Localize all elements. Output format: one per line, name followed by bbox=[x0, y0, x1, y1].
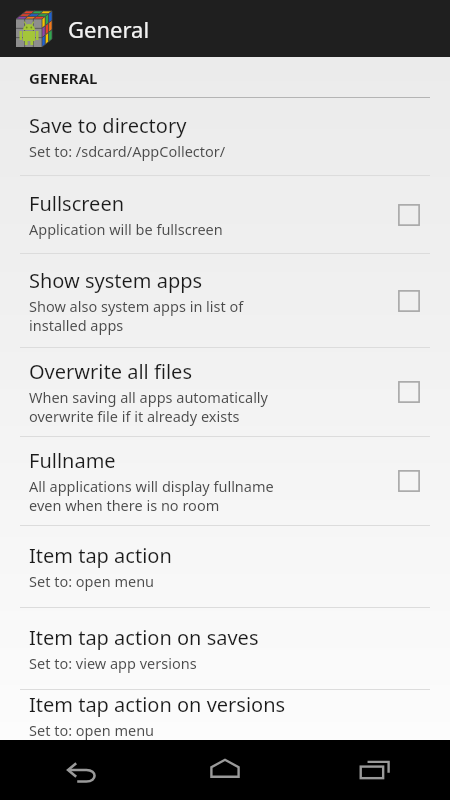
button[interactable]: Home bbox=[150, 740, 300, 800]
staticText: Item tap action on saves bbox=[29, 624, 259, 651]
button[interactable]: Fullname bbox=[386, 458, 432, 504]
button[interactable]: Show system apps bbox=[386, 278, 432, 324]
button[interactable]: Item tap action on saves bbox=[0, 608, 450, 689]
button[interactable]: Item tap action on versions bbox=[0, 690, 450, 740]
staticText: Set to: /sdcard/AppCollector/ bbox=[29, 141, 226, 161]
staticText: Show system apps bbox=[29, 267, 203, 294]
staticText: Set to: open menu bbox=[29, 720, 155, 740]
button[interactable]: Save to directory bbox=[0, 98, 450, 175]
staticText: Overwrite all files bbox=[29, 358, 192, 385]
staticText: All applications will display fullname e… bbox=[29, 476, 274, 515]
button[interactable]: Item tap action bbox=[0, 526, 450, 607]
button[interactable]: Show system apps bbox=[0, 254, 450, 347]
button[interactable]: Overwrite all files bbox=[0, 348, 450, 436]
staticText: Fullscreen bbox=[29, 190, 125, 217]
staticText: Application will be fullscreen bbox=[29, 219, 223, 239]
button[interactable]: Back bbox=[0, 740, 150, 800]
staticText: GENERAL bbox=[29, 68, 98, 88]
staticText: Save to directory bbox=[29, 112, 187, 139]
staticText: General bbox=[68, 14, 150, 44]
button[interactable]: Fullname bbox=[0, 437, 450, 525]
staticText: Fullname bbox=[29, 447, 116, 474]
staticText: Item tap action on versions bbox=[29, 691, 286, 718]
staticText: Item tap action bbox=[29, 542, 172, 569]
staticText: Set to: open menu bbox=[29, 571, 155, 591]
button[interactable]: Recent apps bbox=[300, 740, 450, 800]
button[interactable]: Overwrite all files bbox=[386, 369, 432, 415]
button[interactable]: Fullscreen bbox=[0, 176, 450, 253]
staticText: Show also system apps in list of install… bbox=[29, 296, 244, 335]
staticText: Set to: view app versions bbox=[29, 653, 197, 673]
button[interactable]: Fullscreen bbox=[386, 192, 432, 238]
staticText: When saving all apps automatically overw… bbox=[29, 387, 269, 426]
